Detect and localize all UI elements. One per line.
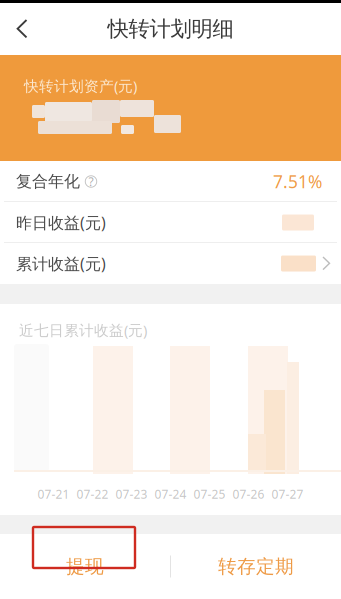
staticText: 快转计划资产(元): [24, 76, 137, 95]
staticText: 07-24: [154, 486, 186, 502]
staticText: 07-25: [193, 486, 225, 502]
staticText: ?: [88, 173, 93, 189]
staticText: 复合年化: [16, 172, 80, 191]
staticText: 07-21: [37, 486, 69, 502]
staticText: 昨日收益(元): [16, 212, 106, 233]
staticText: 7.51%: [273, 170, 322, 193]
staticText: 提现: [66, 555, 104, 578]
staticText: 转存定期: [218, 555, 294, 578]
button[interactable]: 提现: [0, 534, 170, 599]
button[interactable]: Back: [0, 3, 44, 55]
staticText: 07-23: [115, 486, 147, 502]
staticText: 近七日累计收益(元): [19, 320, 147, 340]
staticText: 累计收益(元): [16, 253, 106, 274]
staticText: 快转计划明细: [107, 16, 233, 42]
button[interactable]: 转存定期: [171, 534, 341, 599]
button[interactable]: 累计收益(元): [0, 243, 341, 284]
staticText: 07-22: [76, 486, 108, 502]
staticText: 07-26: [232, 486, 264, 502]
staticText: 07-27: [271, 486, 303, 502]
